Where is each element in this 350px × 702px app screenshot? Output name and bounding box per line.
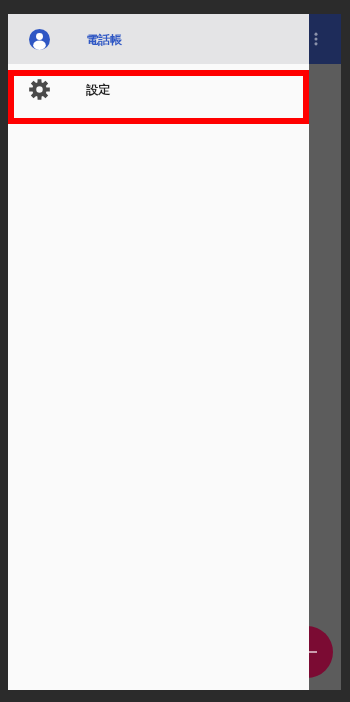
button[interactable]: 設定 — [8, 64, 309, 114]
staticText: 設定 — [86, 82, 110, 97]
button[interactable]: 電話帳 — [8, 14, 309, 64]
button[interactable]: Add contact — [281, 626, 333, 678]
staticText: 電話帳 — [86, 32, 122, 47]
button[interactable]: More options — [301, 24, 331, 54]
